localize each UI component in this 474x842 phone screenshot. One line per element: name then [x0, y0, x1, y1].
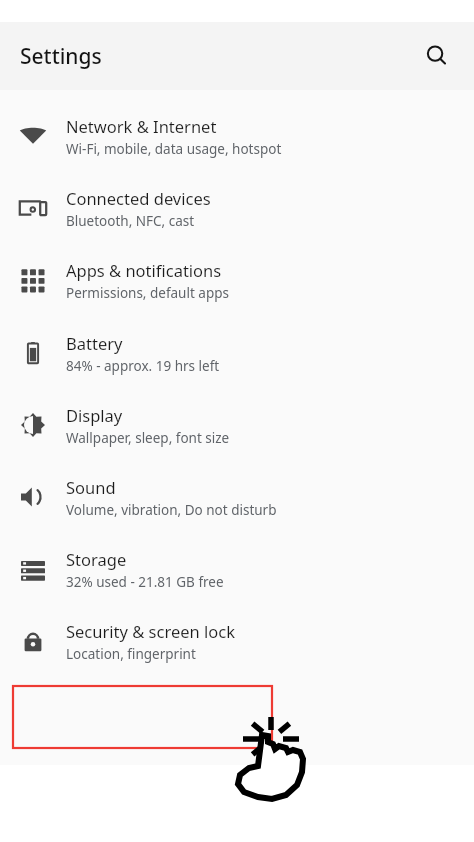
button[interactable]: Sound [0, 461, 474, 533]
staticText: Battery [66, 332, 123, 354]
staticText: Network & Internet [66, 115, 217, 137]
button[interactable]: Security & screen lock [0, 605, 474, 677]
button[interactable]: Display [0, 389, 474, 461]
button[interactable]: Search [417, 36, 457, 76]
staticText: 84% - approx. 19 hrs left [66, 357, 220, 375]
button[interactable]: Battery [0, 317, 474, 389]
staticText: Settings [20, 42, 102, 71]
staticText: Storage [66, 548, 127, 570]
staticText: Wi-Fi, mobile, data usage, hotspot [66, 140, 282, 158]
button[interactable]: Network & Internet [0, 100, 474, 172]
staticText: Display [66, 404, 123, 426]
staticText: Bluetooth, NFC, cast [66, 212, 195, 230]
staticText: Security & screen lock [66, 620, 235, 642]
button[interactable]: Storage [0, 533, 474, 605]
staticText: Apps & notifications [66, 259, 222, 281]
staticText: Location, fingerprint [66, 645, 196, 663]
staticText: Wallpaper, sleep, font size [66, 429, 230, 447]
staticText: Permissions, default apps [66, 284, 229, 302]
staticText: Connected devices [66, 187, 211, 209]
staticText: 32% used - 21.81 GB free [66, 573, 224, 591]
button[interactable]: Apps & notifications [0, 244, 474, 316]
button[interactable]: Connected devices [0, 172, 474, 244]
staticText: Sound [66, 476, 116, 498]
staticText: Volume, vibration, Do not disturb [66, 501, 277, 519]
